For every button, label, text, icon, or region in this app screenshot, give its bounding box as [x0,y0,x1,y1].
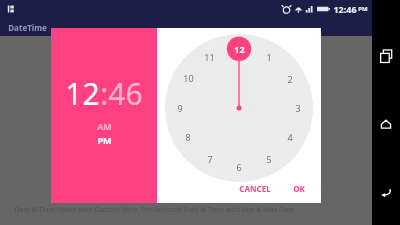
staticText: PM [358,5,368,13]
button[interactable]: AM [97,120,112,132]
button[interactable]: OK [287,180,311,197]
staticText: 5 [266,153,272,165]
button[interactable]: Clock face, 12 o'clock selected [165,34,313,182]
button[interactable]: :46 [100,73,143,114]
staticText: 3 [295,102,301,114]
staticText: 7 [207,153,213,165]
button[interactable]: Back [372,178,400,206]
staticText: 8 [185,131,191,143]
staticText: 9 [177,102,183,114]
button[interactable]: CANCEL [233,180,277,197]
staticText: OK [293,183,305,194]
staticText: CANCEL [239,183,271,194]
button[interactable]: 12 [65,73,100,114]
staticText: 4 [287,131,293,143]
staticText: DateTime [8,22,47,33]
button[interactable]: PM [97,134,112,146]
button[interactable]: Overview [372,42,400,70]
staticText: 12:46 [333,3,357,15]
staticText: 12 [234,43,245,55]
staticText: 11 [204,51,215,63]
button[interactable]: Home [372,110,400,138]
staticText: 1 [266,51,272,63]
staticText: 6 [236,161,242,173]
staticText: 2 [287,73,293,85]
staticText: 10 [183,72,194,84]
staticText: Date & Time Picker with Custom Style, Pr… [14,205,295,215]
